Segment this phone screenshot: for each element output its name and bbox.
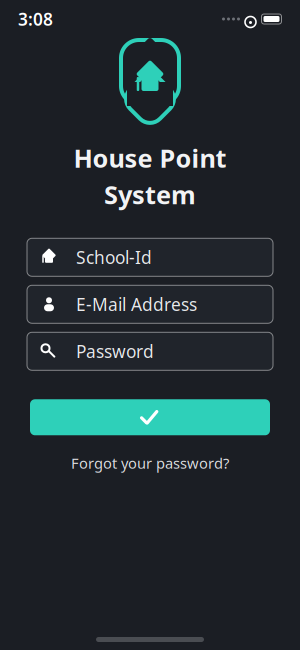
staticText: System [104,178,196,211]
staticText: House Point [73,141,226,175]
button[interactable]: School-Id [27,238,273,276]
button[interactable]: Password [27,332,273,370]
staticText: 3:08 [18,7,53,30]
staticText: Password [76,340,154,363]
button[interactable]: E-Mail Address [27,285,273,323]
staticText: School-Id [76,246,152,269]
button[interactable]: Forgot your password? [59,449,241,477]
button[interactable]: Sign in [0,399,300,435]
staticText: Forgot your password? [71,453,229,473]
staticText: E-Mail Address [76,293,197,316]
